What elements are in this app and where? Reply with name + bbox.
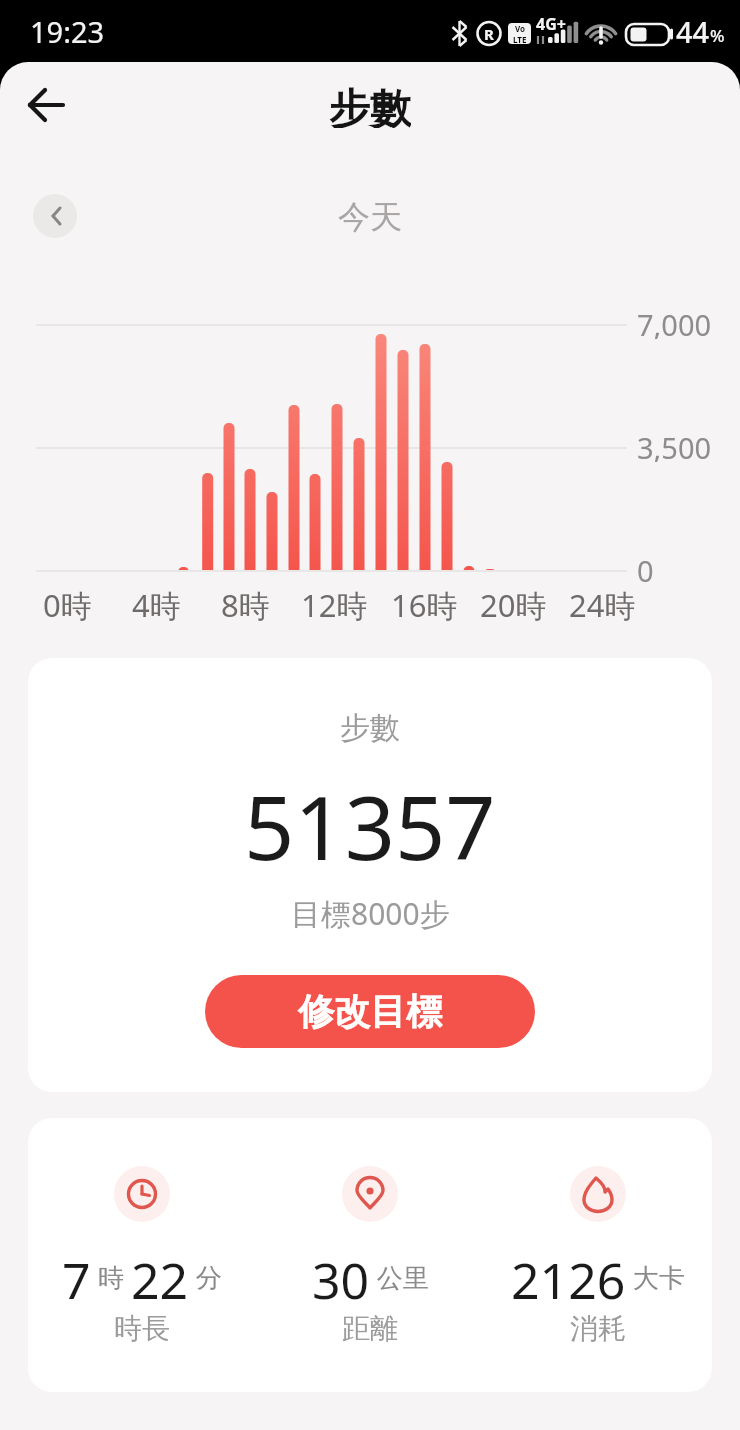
staticText: 大卡 — [626, 1259, 685, 1295]
button[interactable]: 2126 — [484, 1118, 712, 1392]
button[interactable] — [24, 83, 68, 127]
staticText: 修改目標 — [298, 989, 442, 1034]
staticText: 目標8000步 — [291, 893, 450, 934]
staticText: 時 — [91, 1259, 131, 1295]
staticText: Vo — [515, 23, 526, 34]
staticText: 步數 — [340, 709, 400, 747]
button[interactable]: 修改目標 — [205, 975, 535, 1048]
staticText: 3,500 — [637, 428, 712, 462]
button[interactable] — [33, 194, 77, 238]
staticText: 24時 — [569, 584, 636, 622]
staticText: 20時 — [480, 584, 547, 622]
staticText: 分 — [189, 1259, 222, 1295]
staticText: 30 — [312, 1246, 370, 1302]
staticText: 4G+ — [536, 13, 566, 35]
staticText: 0時 — [43, 584, 92, 622]
staticText: 消耗 — [570, 1311, 626, 1346]
staticText: 8時 — [221, 584, 270, 622]
staticText: 公里 — [370, 1259, 429, 1295]
staticText: 步數 — [329, 84, 411, 128]
button[interactable]: 30 — [256, 1118, 484, 1392]
staticText: 22 — [131, 1246, 189, 1302]
staticText: % — [710, 24, 725, 47]
staticText: 距離 — [342, 1311, 398, 1346]
staticText: 16時 — [391, 584, 458, 622]
staticText: R — [484, 24, 494, 44]
staticText: 時長 — [114, 1311, 170, 1346]
staticText: 51357 — [244, 766, 496, 876]
staticText: LTE — [513, 34, 527, 44]
staticText: 19:23 — [30, 12, 105, 51]
staticText: 12時 — [301, 584, 368, 622]
staticText: 44 — [676, 12, 710, 51]
button[interactable]: 7 — [28, 1118, 256, 1392]
staticText: 今天 — [338, 197, 402, 237]
staticText: 4時 — [132, 584, 181, 622]
staticText: 0 — [637, 551, 654, 585]
staticText: 2126 — [511, 1246, 626, 1302]
staticText: 7,000 — [637, 305, 712, 339]
staticText: 7 — [62, 1246, 91, 1302]
